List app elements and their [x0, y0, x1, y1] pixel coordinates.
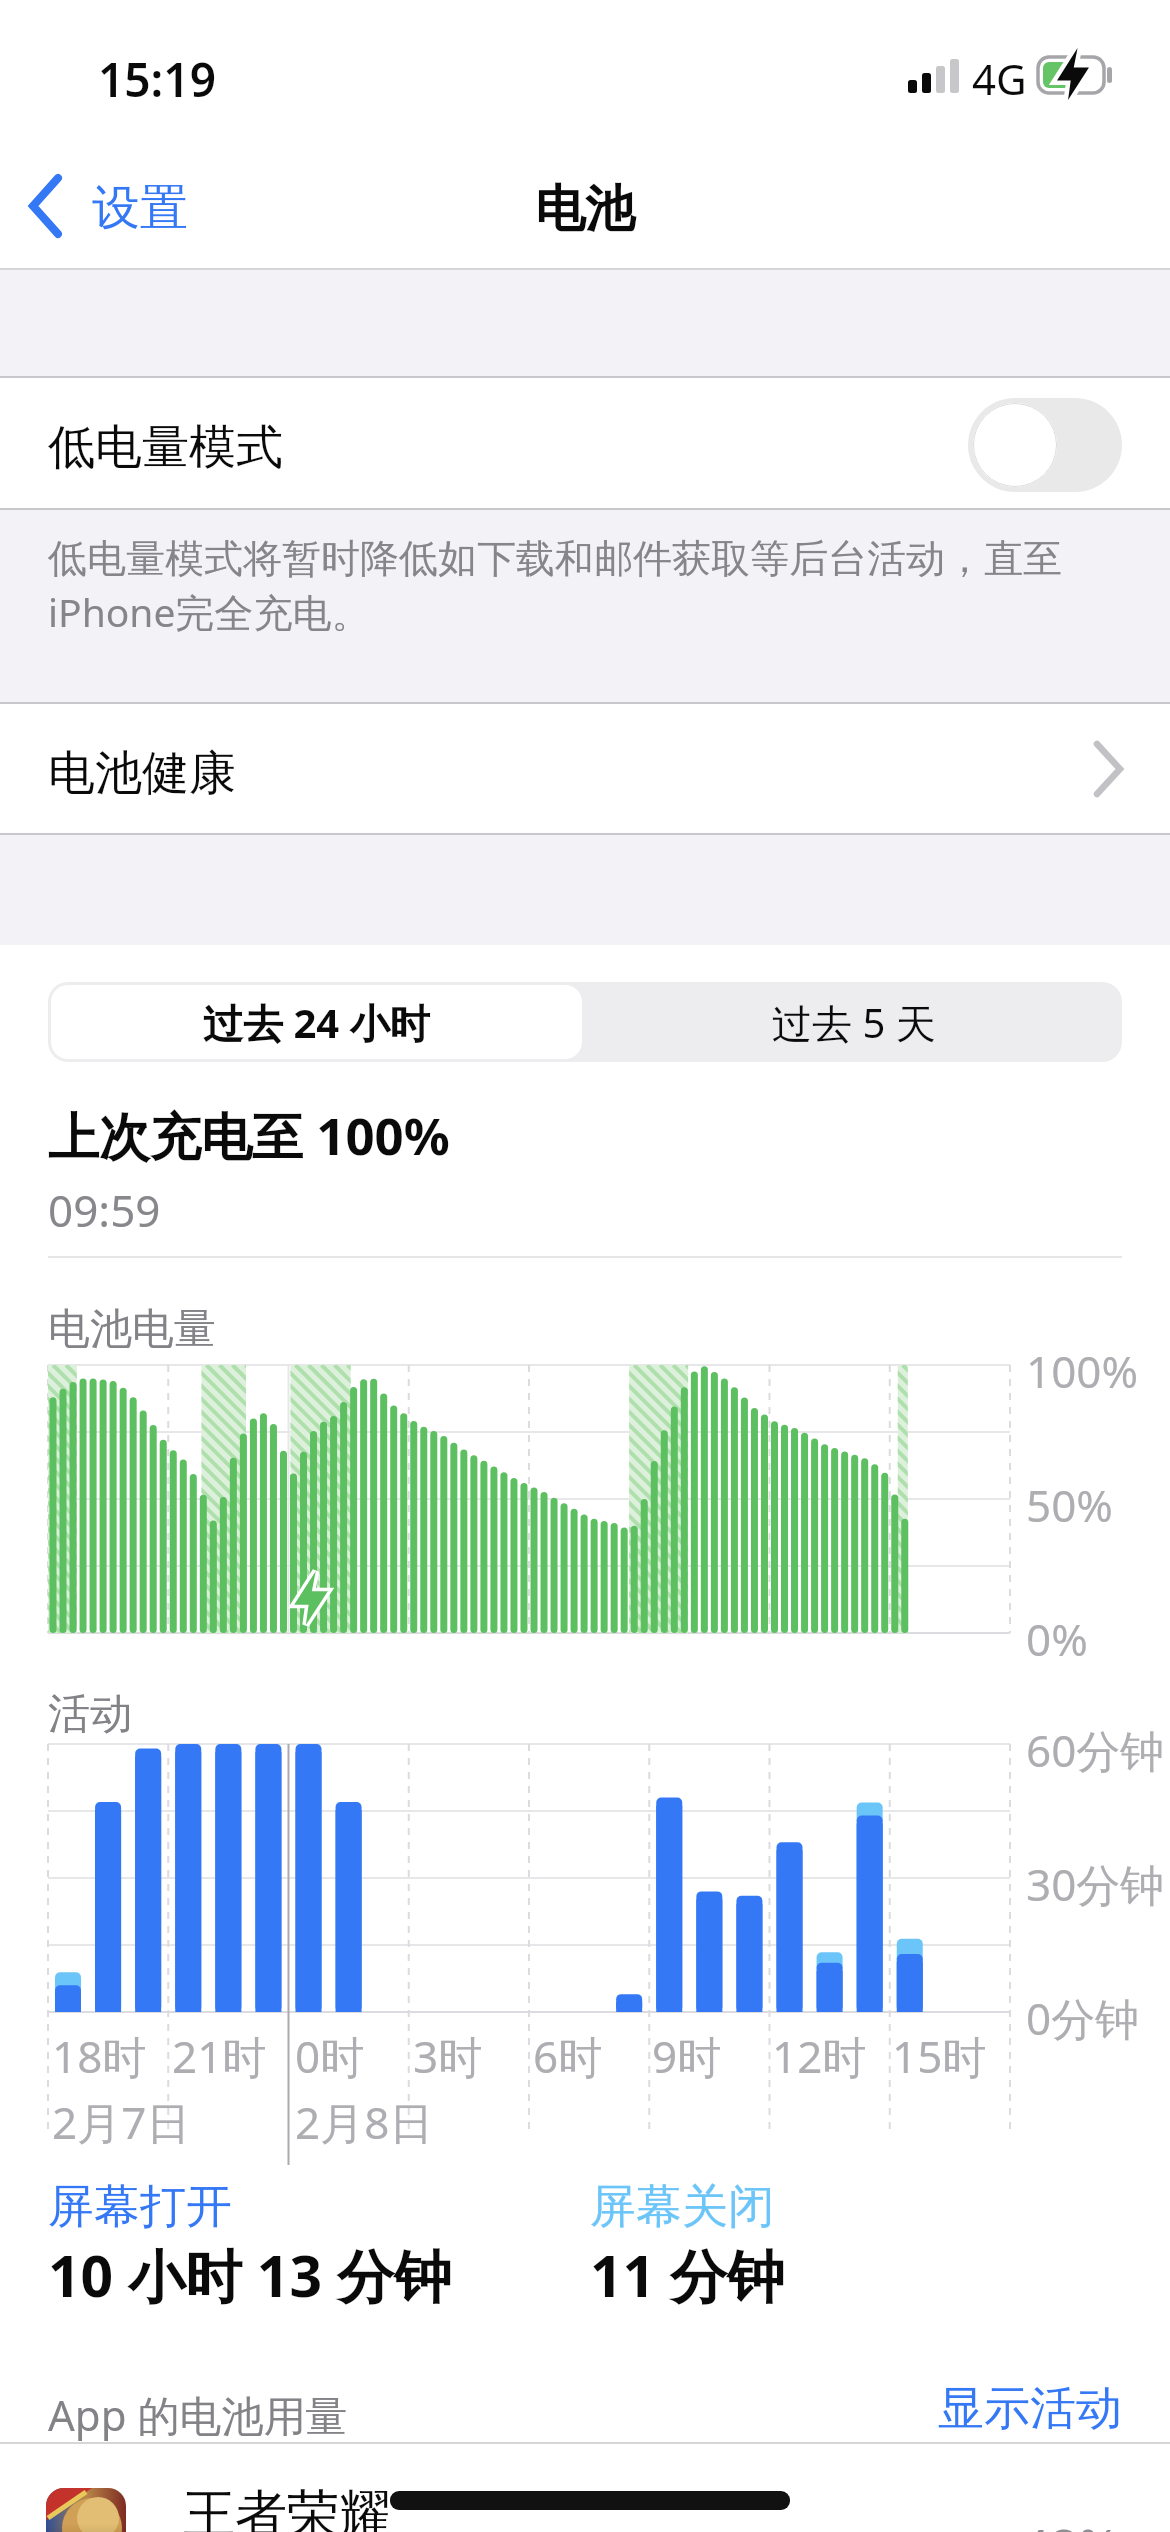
staticText: 0时	[295, 2026, 365, 2086]
staticText: 12时	[772, 2026, 867, 2086]
staticText: 2月7日	[52, 2092, 191, 2152]
button[interactable]: 设置	[24, 168, 224, 244]
staticText: 低电量模式	[48, 418, 283, 477]
button[interactable]: 电池健康	[0, 704, 1170, 833]
staticText: 50%	[1026, 1475, 1113, 1535]
button[interactable]: 低电量模式	[0, 378, 1170, 508]
staticText: App 的电池用量	[48, 2386, 348, 2443]
staticText: 显示活动	[938, 2380, 1122, 2438]
staticText: 60分钟	[1026, 1720, 1165, 1780]
staticText: 电池	[0, 178, 1170, 241]
staticText: 2月8日	[295, 2092, 434, 2152]
button[interactable]: 过去 24 小时	[51, 985, 582, 1059]
staticText: 21时	[172, 2026, 267, 2086]
staticText: 11 分钟	[590, 2236, 785, 2314]
staticText: 过去 24 小时	[203, 995, 430, 1050]
staticText: 3时	[413, 2026, 483, 2086]
staticText: 6时	[533, 2026, 603, 2086]
staticText: 电池健康	[48, 744, 236, 803]
button[interactable]: 过去 5 天	[585, 982, 1122, 1062]
staticText: 低电量模式将暂时降低如下载和邮件获取等后台活动，直至 iPhone完全充电。	[48, 534, 1062, 638]
staticText: 王者荣耀	[183, 2482, 391, 2532]
staticText: 48%	[1021, 2512, 1120, 2532]
staticText: 15:19	[98, 48, 216, 111]
staticText: 9时	[652, 2026, 722, 2086]
button[interactable]: 王者荣耀	[0, 2460, 1170, 2532]
button[interactable]: 显示活动	[0, 2380, 1122, 2438]
staticText: 0分钟	[1026, 1988, 1140, 2048]
staticText: 过去 5 天	[772, 995, 936, 1050]
staticText: 4G	[972, 50, 1027, 107]
staticText: 电池电量	[48, 1303, 216, 1356]
staticText: 设置	[92, 178, 188, 238]
staticText: 0%	[1026, 1609, 1088, 1669]
staticText: 100%	[1026, 1341, 1139, 1401]
staticText: 屏幕打开	[48, 2178, 232, 2236]
staticText: 18时	[52, 2026, 147, 2086]
staticText: 30分钟	[1026, 1854, 1165, 1914]
staticText: 10 小时 13 分钟	[48, 2236, 451, 2314]
staticText: 上次充电至 100%	[48, 1100, 450, 1170]
staticText: 09:59	[48, 1180, 161, 1240]
staticText: 屏幕关闭	[590, 2178, 774, 2236]
staticText: 活动	[48, 1688, 132, 1741]
staticText: 15时	[892, 2026, 987, 2086]
